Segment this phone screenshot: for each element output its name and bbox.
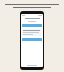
button[interactable] — [23, 30, 41, 35]
button[interactable]: Secondary action — [22, 38, 42, 41]
button[interactable] — [23, 18, 41, 19]
button[interactable]: Primary action — [22, 24, 42, 27]
button[interactable]: Primary action — [20, 11, 44, 70]
